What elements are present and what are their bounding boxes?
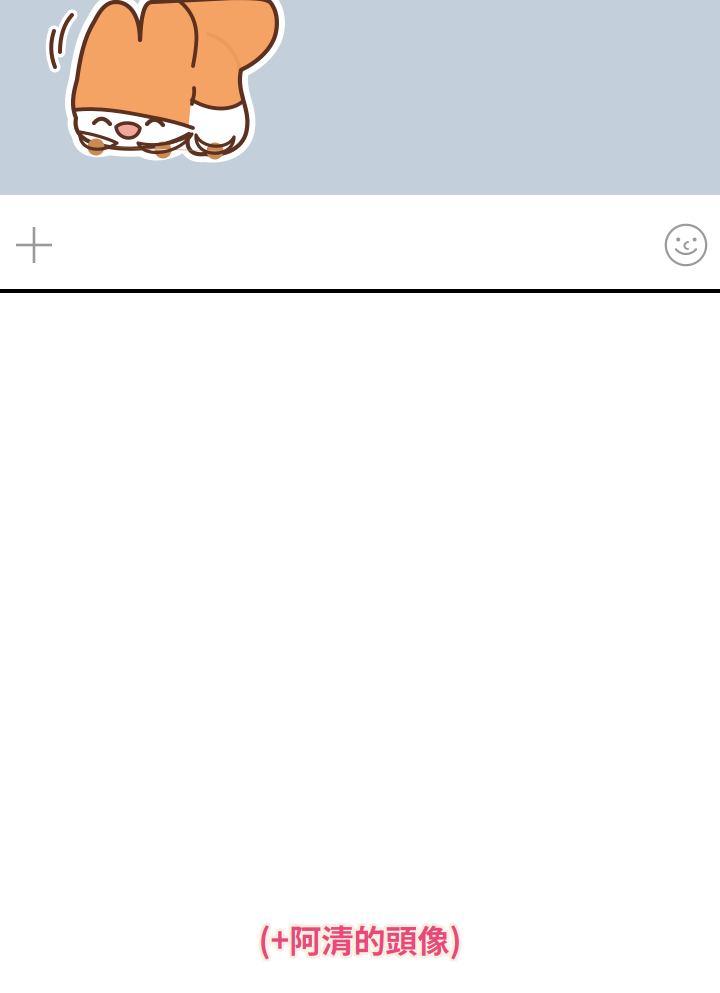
staticText: (+阿清的頭像) [255,916,458,962]
button[interactable]: Add attachment [6,214,62,270]
button[interactable]: Stickers [658,214,714,270]
staticText: (+阿清的頭像) [258,913,461,959]
staticText: (+阿清的頭像) [258,916,461,962]
staticText: (+阿清的頭像) [261,916,464,962]
staticText: (+阿清的頭像) [261,918,464,964]
staticText: (+阿清的頭像) [256,913,459,960]
staticText: (+阿清的頭像) [261,913,464,960]
staticText: (+阿清的頭像) [256,918,459,964]
staticText: (+阿清的頭像) [258,919,461,965]
